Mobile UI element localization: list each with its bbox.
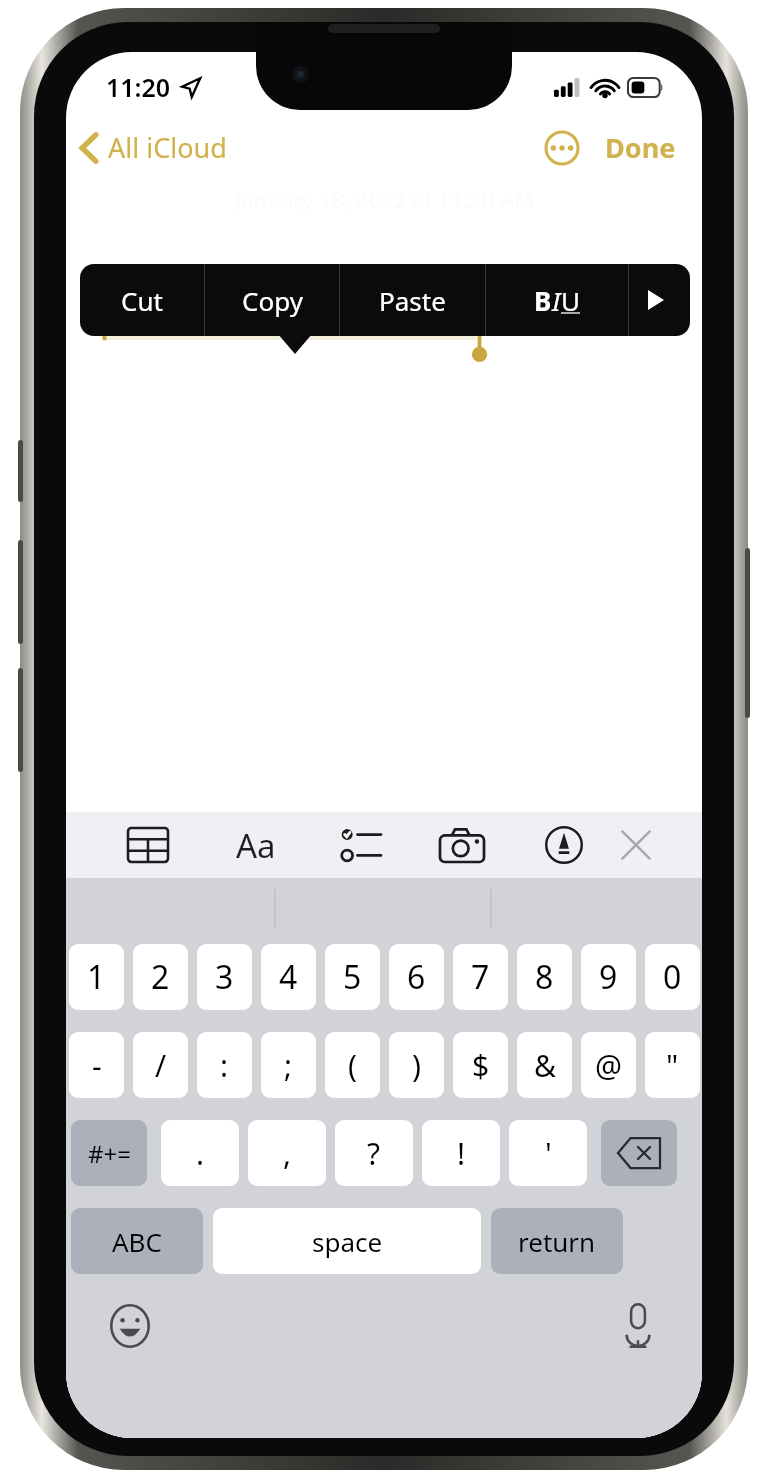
staticText: Paste	[379, 283, 446, 318]
button[interactable]: space	[213, 1208, 481, 1274]
button[interactable]: Close keyboard	[610, 819, 662, 871]
button[interactable]: Camera	[436, 819, 488, 871]
button[interactable]: Done	[601, 123, 680, 172]
button[interactable]: More	[629, 264, 683, 336]
staticText: B	[534, 283, 552, 318]
button[interactable]: 8	[517, 944, 572, 1010]
button[interactable]: 3	[197, 944, 252, 1010]
button[interactable]: @	[581, 1032, 636, 1098]
button[interactable]: Text format	[230, 819, 282, 871]
button[interactable]: Markup	[538, 819, 590, 871]
button[interactable]: 2	[133, 944, 188, 1010]
staticText: All iCloud	[108, 129, 227, 166]
button[interactable]: Cut	[80, 264, 204, 336]
staticText: 11:20	[106, 70, 171, 104]
button[interactable]: ABC	[71, 1208, 203, 1274]
button[interactable]: return	[491, 1208, 623, 1274]
staticText: return	[518, 1224, 596, 1259]
staticText: $	[472, 1045, 490, 1086]
staticText: (	[348, 1045, 357, 1086]
button[interactable]: 6	[389, 944, 444, 1010]
staticText: space	[312, 1224, 383, 1259]
button[interactable]: Paste	[340, 264, 485, 336]
staticText: I	[552, 283, 561, 318]
staticText: ?	[367, 1133, 381, 1174]
button[interactable]: /	[133, 1032, 188, 1098]
button[interactable]: !	[422, 1120, 500, 1186]
button[interactable]: '	[509, 1120, 587, 1186]
staticText: :	[220, 1045, 229, 1086]
staticText: I want to copy and paste this.	[106, 297, 519, 338]
button[interactable]: ,	[248, 1120, 326, 1186]
button[interactable]: &	[517, 1032, 572, 1098]
button[interactable]: Copy	[205, 264, 339, 336]
staticText: Done	[605, 129, 676, 166]
button[interactable]: Checklist	[334, 819, 386, 871]
button[interactable]: -	[69, 1032, 124, 1098]
button[interactable]: Emoji keyboard	[104, 1300, 156, 1352]
button[interactable]: )	[389, 1032, 444, 1098]
staticText: 4	[279, 955, 298, 999]
staticText: -	[92, 1045, 102, 1086]
button[interactable]: #+=	[71, 1120, 147, 1186]
staticText: !	[457, 1133, 466, 1174]
staticText: Cut	[121, 283, 163, 318]
button[interactable]: 0	[645, 944, 700, 1010]
staticText: 0	[663, 955, 682, 999]
staticText: ;	[284, 1045, 293, 1086]
staticText: )	[412, 1045, 421, 1086]
staticText: 2	[151, 955, 170, 999]
button[interactable]: Format bold italic underline	[486, 264, 628, 336]
staticText: Copy	[242, 283, 303, 318]
button[interactable]: :	[197, 1032, 252, 1098]
staticText: 9	[599, 955, 618, 999]
staticText: @	[595, 1045, 622, 1086]
button[interactable]: 5	[325, 944, 380, 1010]
staticText: "	[666, 1045, 679, 1086]
staticText: ,	[283, 1133, 292, 1174]
staticText: '	[545, 1133, 552, 1174]
staticText: #+=	[88, 1137, 131, 1170]
staticText: ABC	[112, 1224, 162, 1259]
staticText: 6	[407, 955, 426, 999]
button[interactable]: 1	[69, 944, 124, 1010]
button[interactable]: $	[453, 1032, 508, 1098]
staticText: Aa	[236, 823, 276, 868]
button[interactable]: More options	[539, 125, 585, 171]
button[interactable]: ?	[335, 1120, 413, 1186]
button[interactable]: Insert table	[122, 819, 174, 871]
staticText: .	[196, 1133, 205, 1174]
button[interactable]: (	[325, 1032, 380, 1098]
button[interactable]: Dictation	[612, 1300, 664, 1352]
button[interactable]: 9	[581, 944, 636, 1010]
staticText: 1	[87, 955, 106, 999]
staticText: U	[561, 283, 581, 318]
staticText: &	[534, 1045, 556, 1086]
staticText: 8	[535, 955, 554, 999]
button[interactable]: "	[645, 1032, 700, 1098]
staticText: 7	[471, 955, 490, 999]
staticText: 3	[215, 955, 234, 999]
button[interactable]: Backspace	[601, 1120, 677, 1186]
button[interactable]: All iCloud	[66, 123, 237, 172]
button[interactable]: ;	[261, 1032, 316, 1098]
button[interactable]: .	[161, 1120, 239, 1186]
button[interactable]: 7	[453, 944, 508, 1010]
staticText: 5	[343, 955, 362, 999]
button[interactable]: 4	[261, 944, 316, 1010]
staticText: /	[155, 1045, 167, 1086]
